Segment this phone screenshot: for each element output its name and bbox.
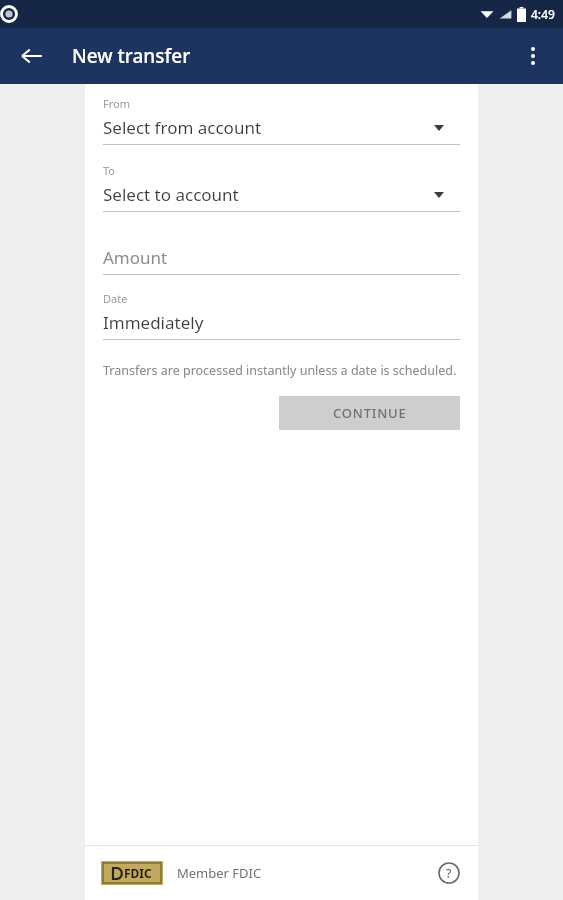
button[interactable]: More options — [509, 32, 557, 80]
button[interactable]: CONTINUE — [279, 396, 460, 430]
staticText: Immediately — [103, 311, 204, 334]
staticText: CONTINUE — [333, 404, 407, 422]
staticText: New transfer — [72, 43, 191, 69]
staticText: Amount — [103, 246, 168, 269]
staticText: Transfers are processed instantly unless… — [103, 362, 457, 379]
staticText: Member FDIC — [177, 864, 262, 882]
button[interactable]: Amount — [103, 246, 460, 275]
button[interactable]: Help — [432, 856, 466, 890]
staticText: ? — [446, 865, 452, 881]
button[interactable]: To — [103, 163, 460, 212]
staticText: Date — [103, 291, 128, 306]
staticText: Select to account — [103, 183, 239, 206]
staticText: To — [103, 163, 116, 178]
staticText: FDIC — [124, 865, 152, 881]
staticText: From — [103, 96, 130, 111]
staticText: Select from account — [103, 116, 262, 139]
button[interactable]: Date — [103, 291, 460, 340]
staticText: 4:49 — [531, 6, 555, 22]
button[interactable]: From — [103, 96, 460, 145]
button[interactable]: Back — [8, 32, 56, 80]
